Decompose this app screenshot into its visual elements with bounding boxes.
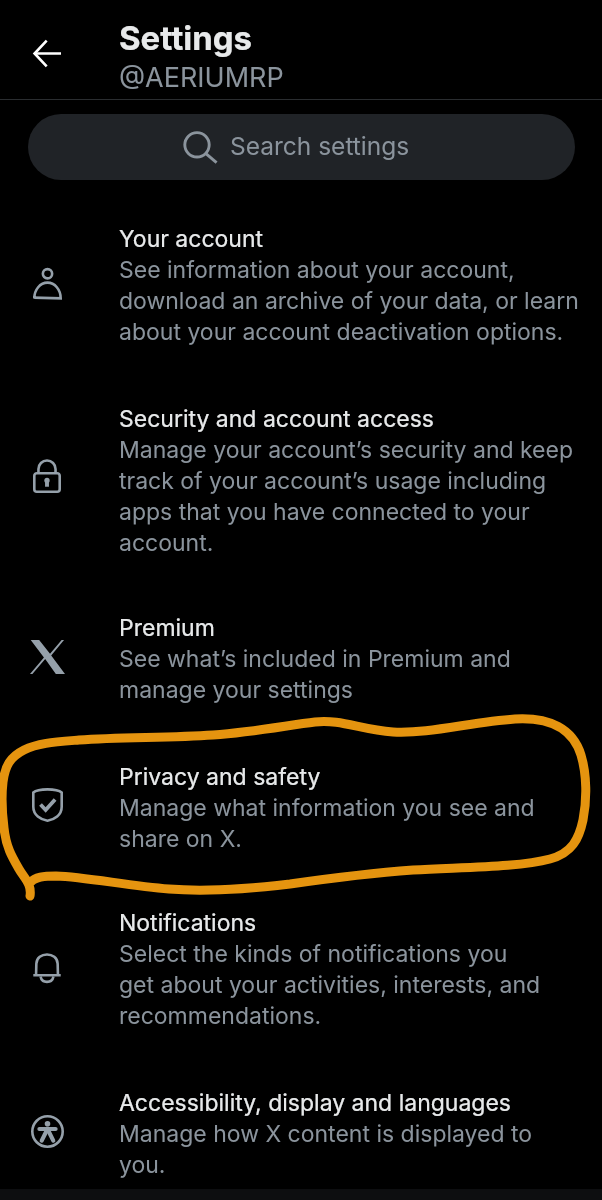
staticText: Manage what information you see and shar…: [119, 792, 535, 854]
staticText: Accessibility, display and languages: [119, 1087, 512, 1118]
button[interactable]: Notifications: [0, 907, 602, 1031]
staticText: Premium: [119, 612, 215, 643]
staticText: Privacy and safety: [119, 761, 321, 792]
staticText: Settings: [119, 18, 253, 58]
staticText: Notifications: [119, 907, 257, 938]
staticText: See information about your account, down…: [119, 254, 579, 347]
button[interactable]: Premium: [0, 612, 602, 705]
staticText: Manage how X content is displayed to you…: [119, 1118, 533, 1180]
button[interactable]: Your account: [0, 223, 602, 347]
staticText: Your account: [119, 223, 264, 254]
button[interactable]: Security and account access: [0, 403, 602, 558]
staticText: Manage your account’s security and keep …: [119, 434, 574, 558]
button[interactable]: Privacy and safety: [0, 761, 602, 854]
button[interactable]: Accessibility, display and languages: [0, 1087, 602, 1180]
staticText: @AERIUMRP: [119, 60, 284, 94]
staticText: Security and account access: [119, 403, 434, 434]
staticText: See what’s included in Premium and manag…: [119, 643, 511, 705]
staticText: Select the kinds of notifications you ge…: [119, 938, 541, 1031]
button[interactable]: Back: [17, 23, 77, 83]
staticText: Search settings: [230, 129, 410, 161]
button[interactable]: Search settings: [28, 114, 575, 180]
